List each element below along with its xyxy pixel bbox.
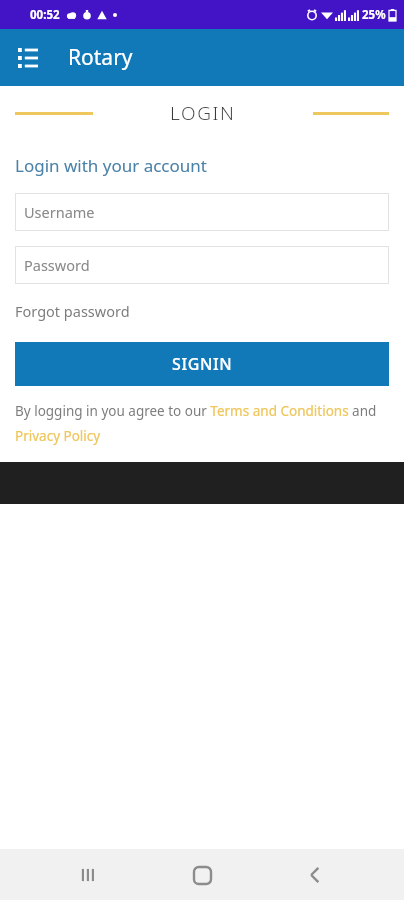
staticText: By logging in you agree to our Terms and… [15, 402, 389, 445]
staticText: Username [24, 202, 95, 222]
button[interactable]: Open navigation menu [8, 38, 48, 78]
staticText: Login with your account [15, 154, 207, 177]
staticText: 00:52 [30, 7, 60, 23]
button[interactable]: Forgot password [15, 301, 130, 321]
button[interactable]: Password [15, 246, 389, 284]
button[interactable]: Username [15, 193, 389, 231]
staticText: Forgot password [15, 301, 130, 321]
button[interactable]: Recent apps [65, 851, 113, 899]
button[interactable]: SIGNIN [15, 342, 389, 386]
staticText: SIGNIN [172, 353, 233, 375]
button[interactable]: Home [178, 851, 226, 899]
staticText: Rotary [68, 43, 133, 72]
staticText: LOGIN [170, 100, 236, 126]
staticText: Password [24, 255, 90, 275]
button[interactable]: Back [291, 851, 339, 899]
staticText: 25% [362, 7, 386, 23]
